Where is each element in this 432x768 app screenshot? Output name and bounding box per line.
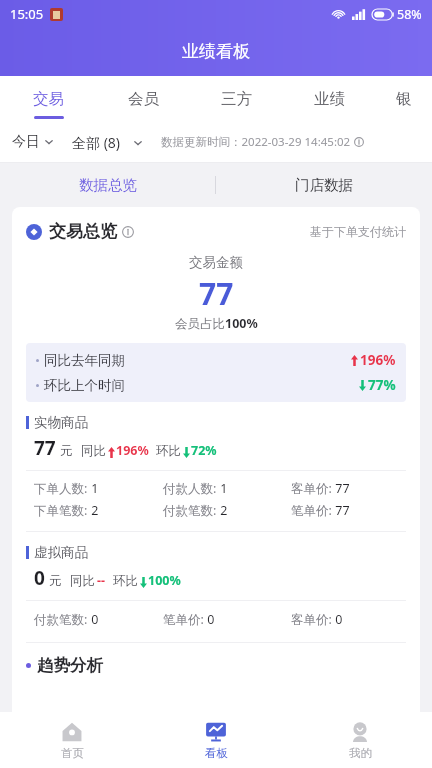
staticText: 72% xyxy=(191,442,217,459)
staticText: 同比 xyxy=(81,443,106,459)
staticText: 0 xyxy=(332,611,343,628)
staticText: 虚拟商品 xyxy=(34,544,88,561)
staticText: 元 xyxy=(60,443,73,459)
other: 看板 xyxy=(205,721,227,743)
staticText: 2 xyxy=(217,502,228,519)
staticText: 付款人数: xyxy=(163,480,217,497)
staticText: 0 xyxy=(34,565,45,591)
button[interactable]: 会员 xyxy=(97,76,190,122)
staticText: 77 xyxy=(34,435,56,461)
other: 我的 xyxy=(349,721,371,743)
button[interactable]: 数据总览 xyxy=(0,163,215,207)
staticText: 业绩看板 xyxy=(182,41,250,62)
staticText: 196% xyxy=(360,351,396,369)
staticText: 环比上个时间 xyxy=(44,377,125,394)
staticText: 业绩 xyxy=(314,89,345,109)
staticText: 我的 xyxy=(349,746,372,760)
staticText: 0 xyxy=(204,611,215,628)
staticText: 交易 xyxy=(33,89,64,109)
staticText: 环比 xyxy=(113,573,138,589)
staticText: 首页 xyxy=(61,746,84,760)
staticText: -- xyxy=(97,572,106,589)
staticText: 100% xyxy=(148,572,181,589)
staticText: 看板 xyxy=(205,746,228,760)
staticText: 笔单价: xyxy=(291,502,332,519)
button[interactable]: 银 xyxy=(376,76,432,122)
staticText: 笔单价: xyxy=(163,611,204,628)
staticText: 196% xyxy=(116,442,149,459)
staticText: 15:05 xyxy=(10,5,44,23)
button[interactable]: 首页 xyxy=(0,712,144,768)
staticText: 付款笔数: xyxy=(34,611,88,628)
button[interactable]: 今日 xyxy=(12,133,54,151)
staticText: 客单价: xyxy=(291,480,332,497)
staticText: 付款笔数: xyxy=(163,502,217,519)
staticText: 银 xyxy=(396,89,412,109)
button[interactable]: 看板 xyxy=(144,712,288,768)
staticText: 客单价: xyxy=(291,611,332,628)
staticText: 77% xyxy=(368,376,396,394)
staticText: 趋势分析 xyxy=(37,655,103,676)
staticText: 今日 xyxy=(12,133,40,151)
staticText: 会员 xyxy=(128,89,159,109)
staticText: 下单人数: xyxy=(34,480,88,497)
staticText: 环比 xyxy=(156,443,181,459)
staticText: 1 xyxy=(88,480,99,497)
staticText: 基于下单支付统计 xyxy=(310,224,406,239)
staticText: 数据总览 xyxy=(79,176,137,194)
staticText: 交易总览 xyxy=(49,221,117,242)
button[interactable]: 业绩 xyxy=(283,76,376,122)
staticText: 数据更新时间：2022-03-29 14:45:02 xyxy=(161,134,351,150)
button[interactable]: 全部 (8) xyxy=(72,133,143,152)
staticText: 同比去年同期 xyxy=(44,352,125,369)
staticText: 58% xyxy=(397,6,422,23)
staticText: 0 xyxy=(88,611,99,628)
other: 首页 xyxy=(61,721,83,743)
staticText: 下单笔数: xyxy=(34,502,88,519)
staticText: 交易金额 xyxy=(189,254,243,271)
staticText: 同比 xyxy=(70,573,95,589)
staticText: 100% xyxy=(225,315,258,332)
staticText: 2 xyxy=(88,502,99,519)
staticText: 77 xyxy=(199,273,234,314)
button[interactable]: 我的 xyxy=(288,712,432,768)
staticText: 元 xyxy=(49,573,62,589)
staticText: 门店数据 xyxy=(295,176,353,194)
staticText: 77 xyxy=(332,502,350,519)
button[interactable]: 交易 xyxy=(0,76,97,122)
button[interactable]: 门店数据 xyxy=(216,163,432,207)
staticText: 全部 (8) xyxy=(72,133,121,152)
button[interactable]: 三方 xyxy=(190,76,283,122)
staticText: 77 xyxy=(332,480,350,497)
staticText: 三方 xyxy=(221,89,252,109)
staticText: 1 xyxy=(217,480,228,497)
staticText: 会员占比 xyxy=(175,316,225,332)
staticText: 实物商品 xyxy=(34,414,88,431)
